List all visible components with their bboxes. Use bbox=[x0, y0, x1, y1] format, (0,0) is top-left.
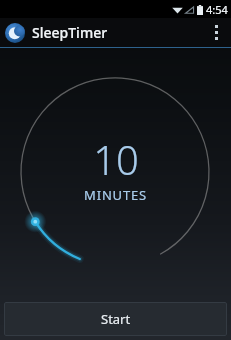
staticText: 10 bbox=[93, 132, 139, 186]
button[interactable]: Duration dial, 10 minutes bbox=[0, 48, 231, 302]
staticText: Start bbox=[101, 310, 131, 328]
staticText: 4:54 bbox=[206, 2, 228, 17]
staticText: MINUTES bbox=[84, 186, 147, 204]
button[interactable]: Start bbox=[4, 302, 227, 336]
button[interactable]: More options bbox=[203, 18, 229, 47]
staticText: SleepTimer bbox=[32, 23, 108, 42]
